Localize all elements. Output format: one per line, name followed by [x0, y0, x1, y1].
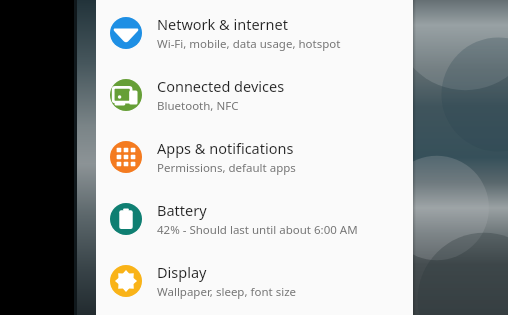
staticText: Connected devices [157, 76, 285, 96]
staticText: Apps & notifications [157, 138, 294, 158]
staticText: Display [157, 262, 207, 282]
staticText: Wi-Fi, mobile, data usage, hotspot [157, 36, 341, 52]
staticText: Battery [157, 200, 207, 220]
button[interactable]: Connected devices [96, 64, 413, 126]
button[interactable]: Network & internet [96, 2, 413, 64]
button[interactable]: Display [96, 250, 413, 312]
staticText: Bluetooth, NFC [157, 98, 239, 114]
button[interactable]: Apps & notifications [96, 126, 413, 188]
staticText: 42% - Should last until about 6:00 AM [157, 222, 358, 238]
staticText: Permissions, default apps [157, 160, 296, 176]
staticText: Network & internet [157, 14, 288, 34]
button[interactable]: Battery [96, 188, 413, 250]
staticText: Wallpaper, sleep, font size [157, 284, 297, 300]
